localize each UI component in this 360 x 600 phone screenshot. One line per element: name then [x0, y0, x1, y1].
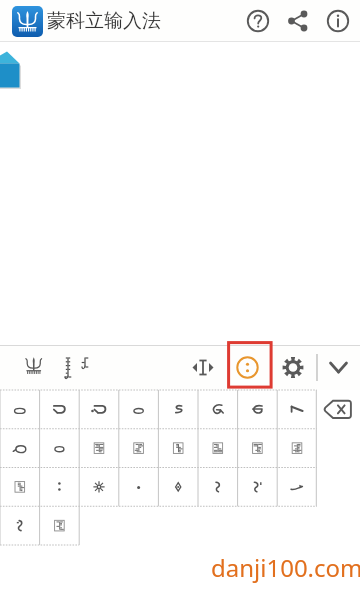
button[interactable]: Key	[40, 468, 80, 507]
button[interactable]: Key	[160, 429, 200, 468]
button[interactable]: Key	[120, 390, 160, 429]
button[interactable]: Key	[80, 390, 120, 429]
button[interactable]: Key	[40, 390, 80, 429]
button[interactable]: Key	[40, 507, 80, 545]
button[interactable]: More	[226, 345, 269, 390]
button[interactable]: Key	[200, 390, 240, 429]
button[interactable]: Move cursor	[180, 345, 226, 390]
button[interactable]: Key	[120, 468, 160, 507]
button[interactable]: Key	[0, 429, 40, 468]
button[interactable]: Word 1	[58, 345, 78, 390]
button[interactable]: Key	[240, 468, 280, 507]
button[interactable]: Key	[0, 390, 40, 429]
button[interactable]: Key	[200, 468, 240, 507]
button[interactable]: App icon	[12, 6, 43, 37]
staticText: 蒙科立输入法	[47, 9, 161, 33]
button[interactable]: Key	[40, 429, 80, 468]
button[interactable]: Key	[280, 390, 320, 429]
staticText: danji100.com	[211, 551, 360, 584]
button[interactable]: Key	[160, 390, 200, 429]
button[interactable]: Share	[278, 1, 318, 41]
button[interactable]: Hide keyboard	[317, 345, 360, 390]
button[interactable]: Key	[80, 429, 120, 468]
button[interactable]: Key	[280, 468, 320, 507]
button[interactable]: Backspace	[320, 390, 360, 429]
button[interactable]: Key	[80, 468, 120, 507]
button[interactable]: Help	[238, 1, 278, 41]
button[interactable]: Key	[240, 390, 280, 429]
button[interactable]: Key	[120, 429, 160, 468]
button[interactable]: Key	[0, 468, 40, 507]
button[interactable]: Info	[318, 1, 358, 41]
button[interactable]: Mongolian keyboard	[16, 345, 52, 390]
button[interactable]: Key	[200, 429, 240, 468]
button[interactable]: Key	[160, 468, 200, 507]
button[interactable]: Key	[240, 429, 280, 468]
button[interactable]: Key	[280, 429, 320, 468]
button[interactable]: Key	[0, 507, 40, 545]
button[interactable]: Settings	[269, 345, 317, 390]
button[interactable]: Word 2	[76, 345, 94, 390]
